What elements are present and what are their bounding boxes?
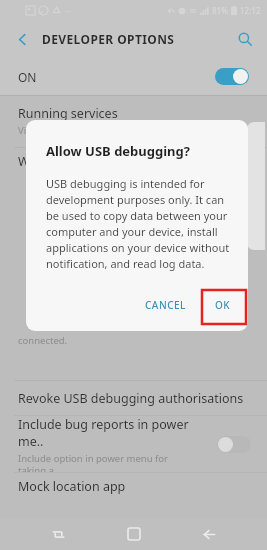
staticText: Include bug reports in power me.. (18, 416, 197, 450)
staticText: Mock location app (18, 478, 126, 495)
staticText: View and control currently running servi… (18, 124, 214, 137)
staticText: Include option in power menu for taking … (18, 452, 197, 472)
button[interactable]: Search (231, 25, 259, 53)
staticText: Allow USB debugging? (46, 142, 190, 160)
staticText: Revoke USB debugging authorisations (18, 390, 244, 407)
button[interactable]: Running services (0, 96, 267, 137)
button[interactable] (217, 436, 251, 453)
button[interactable] (215, 68, 249, 85)
staticText: connected. (18, 334, 68, 347)
staticText: 81% (212, 5, 228, 16)
button[interactable]: ON (0, 58, 267, 95)
button[interactable]: Back (8, 25, 36, 53)
staticText: WebView implementation (18, 153, 169, 170)
staticText: CANCEL (145, 298, 186, 312)
staticText: DEVELOPER OPTIONS (42, 31, 175, 47)
staticText: USB debugging is intended for developmen… (46, 176, 232, 271)
button[interactable]: Recents (40, 518, 76, 550)
button[interactable]: Back (191, 518, 227, 550)
staticText: 12:12 (240, 5, 261, 16)
button[interactable]: Include bug reports in power me.. (0, 416, 267, 472)
staticText: OK (215, 298, 231, 312)
button[interactable]: WebView implementation (0, 148, 267, 174)
button[interactable]: Mock location app (0, 473, 267, 499)
button[interactable]: CANCEL (135, 291, 196, 319)
button[interactable]: OK (202, 289, 244, 321)
button[interactable]: Revoke USB debugging authorisations (0, 381, 267, 415)
staticText: ON (18, 69, 37, 85)
button[interactable]: Home (116, 518, 152, 550)
staticText: Running services (18, 105, 118, 122)
